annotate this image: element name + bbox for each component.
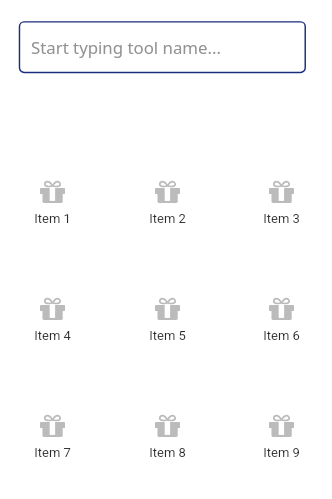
other: Gift xyxy=(155,298,180,320)
other: Gift xyxy=(155,181,180,203)
button[interactable]: Gift xyxy=(127,181,207,226)
button[interactable]: Gift xyxy=(12,415,92,460)
other: Gift xyxy=(40,181,65,203)
button[interactable]: Gift xyxy=(241,181,321,226)
staticText: Item 5 xyxy=(149,328,186,343)
other: Gift xyxy=(269,415,294,437)
button[interactable]: Gift xyxy=(241,415,321,460)
other: Gift xyxy=(40,298,65,320)
button[interactable]: Gift xyxy=(12,298,92,343)
button[interactable]: Gift xyxy=(127,415,207,460)
staticText: Item 8 xyxy=(149,445,186,460)
staticText: Start typing tool name... xyxy=(31,36,222,59)
staticText: Item 3 xyxy=(263,211,300,226)
other: Gift xyxy=(269,298,294,320)
staticText: Item 4 xyxy=(34,328,71,343)
staticText: Item 7 xyxy=(34,445,71,460)
button[interactable]: Gift xyxy=(127,298,207,343)
staticText: Item 6 xyxy=(263,328,300,343)
button[interactable]: Start typing tool name... xyxy=(19,21,306,73)
other: Gift xyxy=(155,415,180,437)
staticText: Item 9 xyxy=(263,445,300,460)
staticText: Item 1 xyxy=(34,211,71,226)
staticText: Item 2 xyxy=(149,211,186,226)
other: Gift xyxy=(269,181,294,203)
button[interactable]: Gift xyxy=(241,298,321,343)
button[interactable]: Gift xyxy=(12,181,92,226)
other: Gift xyxy=(40,415,65,437)
